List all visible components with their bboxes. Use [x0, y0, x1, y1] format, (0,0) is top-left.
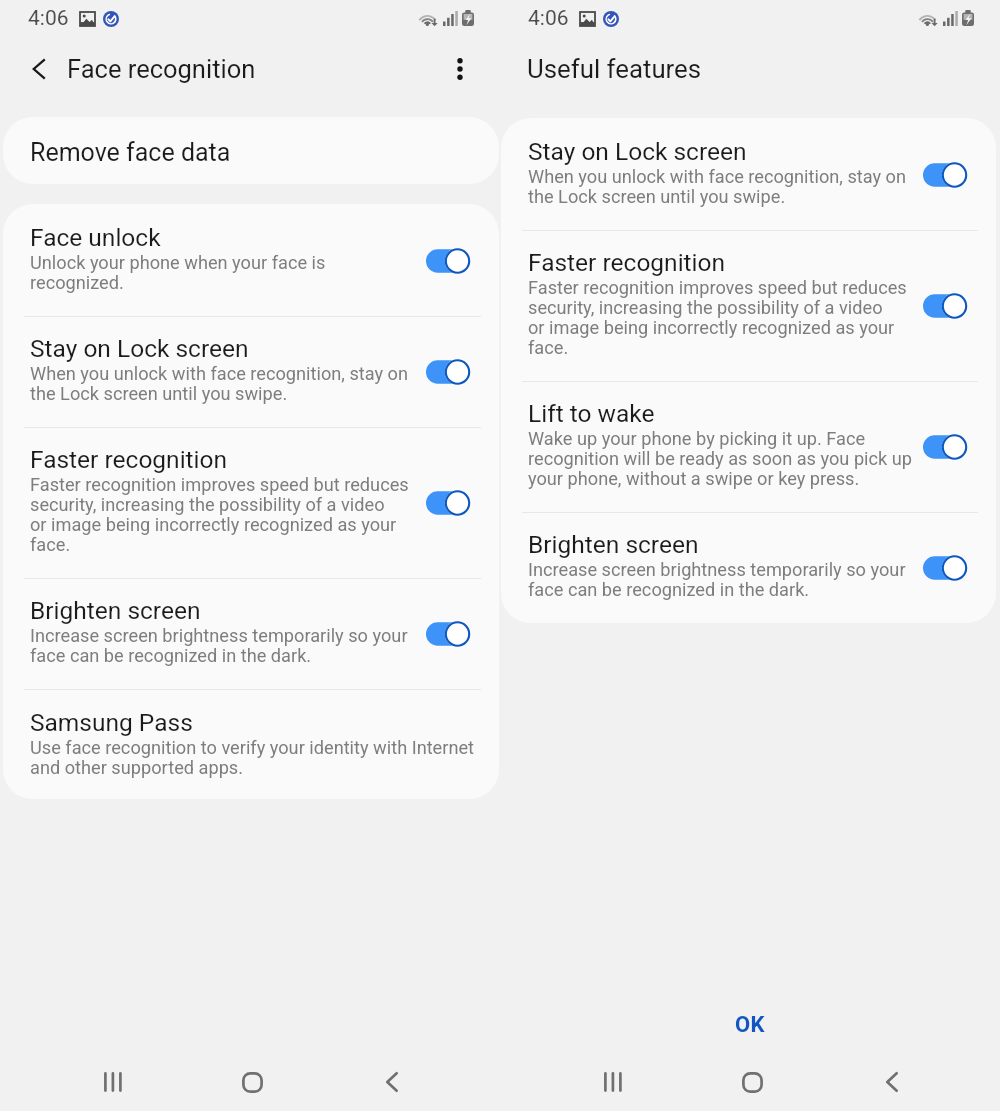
button[interactable]: Brighten screen: [501, 513, 996, 623]
button[interactable]: Home: [217, 1062, 288, 1102]
button[interactable]: OK: [701, 1002, 799, 1048]
button[interactable]: Navigate up: [21, 50, 59, 88]
staticText: Samsung Pass: [30, 708, 193, 737]
staticText: Increase screen brightness temporarily s…: [30, 625, 408, 666]
button[interactable]: Toggle: [424, 486, 474, 520]
button[interactable]: Lift to wake: [501, 382, 996, 512]
staticText: Unlock your phone when your face is reco…: [30, 252, 326, 293]
button[interactable]: Face unlock: [3, 206, 499, 316]
staticText: Wake up your phone by picking it up. Fac…: [528, 428, 913, 489]
button[interactable]: Stay on Lock screen: [501, 120, 996, 230]
staticText: Increase screen brightness temporarily s…: [528, 559, 906, 600]
button[interactable]: Home: [717, 1062, 788, 1102]
staticText: Faster recognition: [30, 445, 228, 474]
staticText: Face unlock: [30, 223, 161, 252]
staticText: When you unlock with face recognition, s…: [528, 166, 907, 207]
button[interactable]: Toggle: [424, 355, 474, 389]
button[interactable]: Back: [356, 1062, 427, 1102]
button[interactable]: Toggle: [424, 617, 474, 651]
button[interactable]: Faster recognition: [3, 428, 499, 578]
button[interactable]: Brighten screen: [3, 579, 499, 689]
staticText: Brighten screen: [528, 530, 699, 559]
staticText: Faster recognition improves speed but re…: [30, 474, 409, 555]
button[interactable]: Toggle: [921, 289, 971, 323]
button[interactable]: Remove face data: [3, 117, 499, 184]
staticText: Useful features: [527, 54, 702, 84]
staticText: Faster recognition: [528, 248, 726, 277]
button[interactable]: Back: [856, 1062, 927, 1102]
button[interactable]: Toggle: [921, 551, 971, 585]
staticText: Remove face data: [30, 138, 231, 167]
staticText: Use face recognition to verify your iden…: [30, 737, 475, 778]
button[interactable]: Recent apps: [577, 1062, 648, 1102]
staticText: When you unlock with face recognition, s…: [30, 363, 409, 404]
staticText: Lift to wake: [528, 399, 655, 428]
button[interactable]: Toggle: [424, 244, 474, 278]
button[interactable]: Toggle: [921, 158, 971, 192]
staticText: 4:06: [28, 6, 69, 31]
button[interactable]: More options: [441, 50, 479, 88]
staticText: Face recognition: [67, 54, 256, 84]
button[interactable]: Toggle: [921, 430, 971, 464]
button[interactable]: Samsung Pass: [3, 690, 499, 799]
staticText: Stay on Lock screen: [30, 334, 249, 363]
staticText: 4:06: [528, 6, 569, 31]
staticText: OK: [735, 1012, 765, 1038]
staticText: Faster recognition improves speed but re…: [528, 277, 907, 358]
button[interactable]: Stay on Lock screen: [3, 317, 499, 427]
button[interactable]: Recent apps: [77, 1062, 148, 1102]
button[interactable]: Faster recognition: [501, 231, 996, 381]
staticText: Stay on Lock screen: [528, 137, 747, 166]
staticText: Brighten screen: [30, 596, 201, 625]
